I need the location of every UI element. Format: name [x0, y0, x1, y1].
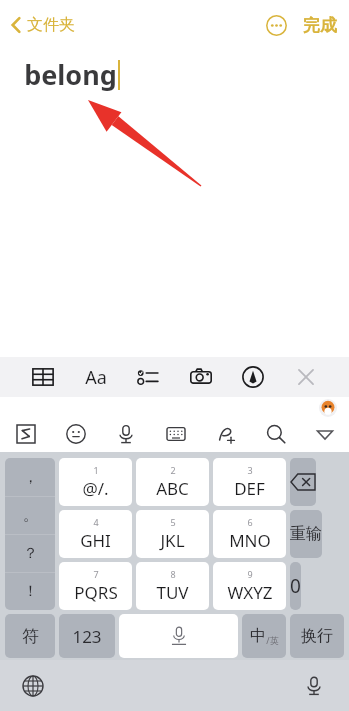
- staticText: 8: [170, 568, 176, 580]
- button[interactable]: 符: [5, 614, 55, 658]
- staticText: 符: [22, 626, 39, 647]
- staticText: MNO: [229, 529, 271, 552]
- button[interactable]: Draw: [236, 360, 270, 394]
- staticText: belong: [24, 56, 117, 93]
- staticText: ！: [23, 582, 38, 601]
- button[interactable]: Camera: [184, 360, 218, 394]
- button[interactable]: Handwriting: [201, 416, 251, 452]
- staticText: 。: [23, 506, 38, 525]
- button[interactable]: Sogou mascot: [319, 399, 337, 417]
- staticText: 3: [247, 464, 253, 476]
- staticText: DEF: [234, 477, 265, 500]
- staticText: 文件夹: [27, 15, 75, 35]
- button[interactable]: Voice input: [101, 416, 151, 452]
- button[interactable]: Keyboard: [151, 416, 201, 452]
- button[interactable]: Switch language: [20, 673, 46, 699]
- button[interactable]: 5: [136, 510, 209, 558]
- staticText: ，: [23, 468, 38, 487]
- button[interactable]: 7: [59, 562, 132, 610]
- staticText: 中: [250, 626, 266, 646]
- button[interactable]: 中: [242, 614, 286, 658]
- staticText: 123: [72, 625, 102, 648]
- staticText: 1: [93, 464, 99, 476]
- button[interactable]: 8: [136, 562, 209, 610]
- staticText: 6: [247, 516, 253, 528]
- button[interactable]: Hide keyboard: [301, 416, 349, 452]
- staticText: @/.: [82, 477, 109, 500]
- button[interactable]: 2: [136, 458, 209, 506]
- button[interactable]: 换行: [290, 614, 344, 658]
- staticText: 换行: [301, 626, 333, 646]
- button[interactable]: 完成: [299, 9, 341, 42]
- button[interactable]: 4: [59, 510, 132, 558]
- button[interactable]: Text format: [79, 360, 113, 394]
- button[interactable]: 1: [59, 458, 132, 506]
- button[interactable]: 123: [59, 614, 115, 658]
- button[interactable]: 文件夹: [6, 9, 79, 41]
- staticText: GHI: [80, 529, 111, 552]
- staticText: 完成: [303, 15, 337, 36]
- staticText: PQRS: [74, 581, 118, 604]
- staticText: JKL: [160, 529, 185, 552]
- button[interactable]: Sogou: [0, 416, 51, 452]
- staticText: 9: [247, 568, 253, 580]
- staticText: 重输: [290, 524, 322, 544]
- staticText: ABC: [156, 477, 189, 500]
- staticText: 4: [93, 516, 99, 528]
- staticText: Aa: [85, 365, 107, 390]
- button[interactable]: 9: [213, 562, 286, 610]
- button[interactable]: 重输: [290, 510, 322, 558]
- button[interactable]: More options: [259, 8, 293, 42]
- button[interactable]: Checklist: [131, 360, 165, 394]
- button[interactable]: Emoji: [51, 416, 101, 452]
- button[interactable]: Delete: [290, 458, 316, 506]
- button[interactable]: 6: [213, 510, 286, 558]
- button[interactable]: Table: [26, 360, 60, 394]
- button[interactable]: 0: [290, 562, 301, 610]
- button[interactable]: Close: [289, 360, 323, 394]
- staticText: 2: [170, 464, 176, 476]
- staticText: 5: [170, 516, 176, 528]
- button[interactable]: Space, voice input: [119, 614, 238, 658]
- button[interactable]: 3: [213, 458, 286, 506]
- staticText: TUV: [156, 581, 189, 604]
- staticText: 7: [93, 568, 99, 580]
- button[interactable]: Dictation: [301, 673, 327, 699]
- staticText: /英: [266, 634, 279, 646]
- button[interactable]: ，: [5, 458, 55, 610]
- staticText: WXYZ: [227, 581, 273, 604]
- button[interactable]: Search: [251, 416, 301, 452]
- staticText: 0: [290, 573, 301, 599]
- staticText: ？: [23, 544, 38, 563]
